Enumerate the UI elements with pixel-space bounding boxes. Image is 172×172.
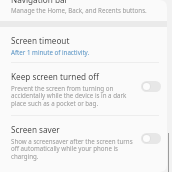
staticText: Navigation bar bbox=[11, 0, 68, 5]
button[interactable]: Navigation bar bbox=[0, 0, 167, 20]
button[interactable]: Screen saver bbox=[141, 133, 161, 144]
staticText: Prevent the screen from turning on accid… bbox=[11, 84, 137, 108]
staticText: Show a screensaver after the screen turn… bbox=[11, 137, 137, 161]
staticText: After 1 minute of inactivity. bbox=[11, 48, 90, 56]
staticText: Keep screen turned off bbox=[11, 71, 99, 82]
button[interactable]: Screen timeout bbox=[0, 27, 167, 62]
staticText: Screen timeout bbox=[11, 35, 70, 46]
staticText: Manage the Home, Back, and Recents butto… bbox=[11, 6, 147, 14]
button[interactable]: Screen saver bbox=[0, 116, 167, 168]
staticText: Screen saver bbox=[11, 124, 60, 135]
button[interactable]: Keep screen turned off bbox=[0, 63, 167, 115]
button[interactable]: Keep screen turned off bbox=[141, 81, 161, 92]
